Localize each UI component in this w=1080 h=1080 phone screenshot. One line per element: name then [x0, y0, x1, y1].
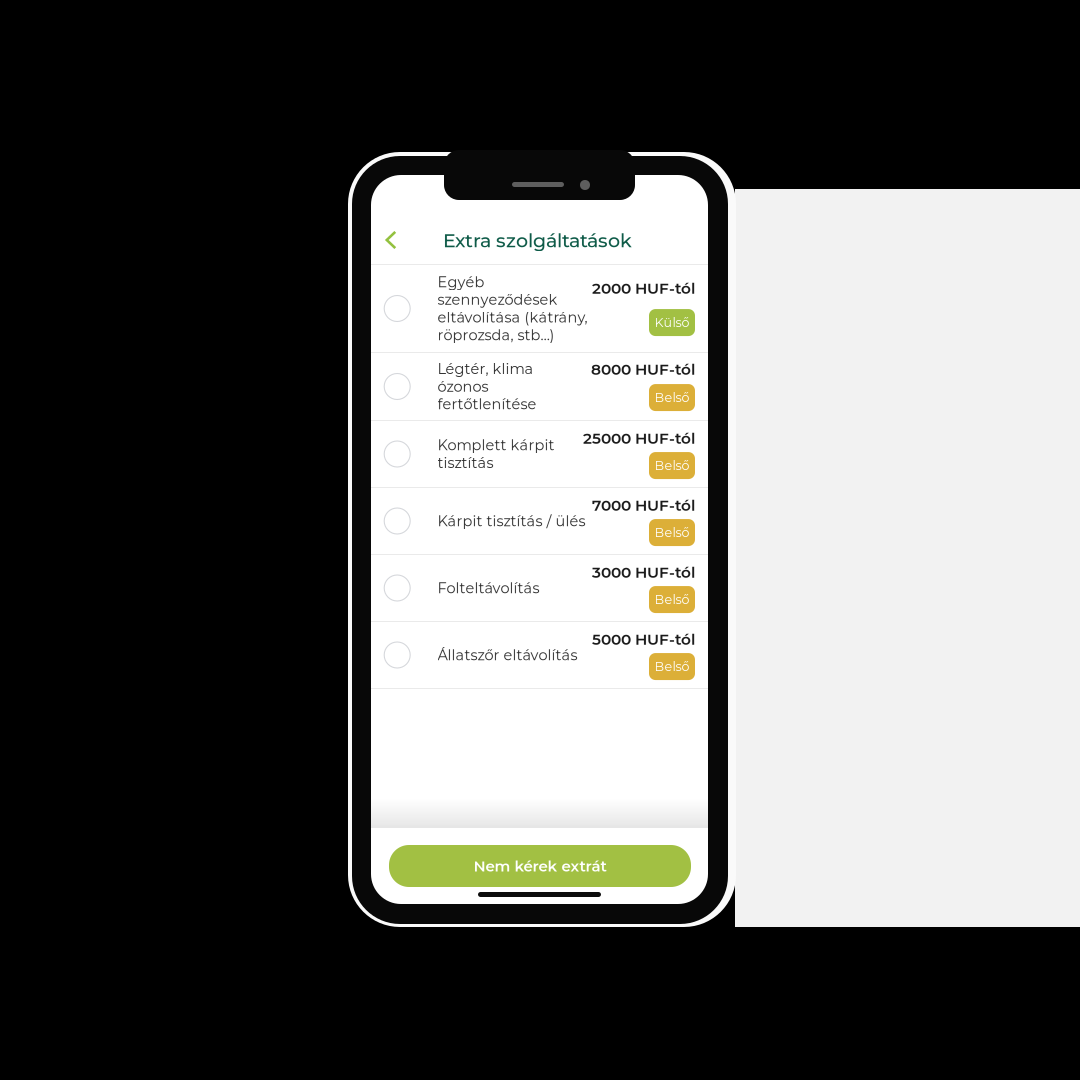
button[interactable]: Állatszőr eltávolítás: [371, 622, 708, 688]
staticText: Nem kérek extrát: [473, 857, 606, 875]
button[interactable]: Folteltávolítás: [371, 555, 708, 621]
staticText: Belső: [654, 390, 689, 405]
staticText: Belső: [654, 592, 689, 607]
staticText: Belső: [654, 659, 689, 674]
staticText: 8000 HUF-tól: [591, 360, 695, 378]
staticText: Belső: [654, 458, 689, 473]
staticText: 7000 HUF-tól: [592, 496, 695, 514]
staticText: Extra szolgáltatások: [443, 229, 632, 252]
staticText: Folteltávolítás: [437, 579, 539, 597]
staticText: 3000 HUF-tól: [592, 563, 695, 581]
staticText: Légtér, klima ózonos fertőtlenítése: [437, 360, 536, 413]
button[interactable]: Nem kérek extrát: [389, 845, 691, 887]
button[interactable]: Komplett kárpit tisztítás: [371, 421, 708, 487]
staticText: Állatszőr eltávolítás: [437, 646, 577, 664]
button[interactable]: Back: [370, 218, 412, 262]
button[interactable]: Kárpit tisztítás / ülés: [371, 488, 708, 554]
staticText: Komplett kárpit tisztítás: [437, 436, 554, 472]
staticText: 5000 HUF-tól: [592, 630, 695, 648]
staticText: 2000 HUF-tól: [592, 279, 695, 297]
staticText: Egyéb szennyeződések eltávolítása (kátrá…: [437, 273, 587, 344]
staticText: Kárpit tisztítás / ülés: [437, 512, 585, 530]
button[interactable]: Egyéb szennyeződések eltávolítása (kátrá…: [371, 265, 708, 352]
staticText: Külső: [654, 315, 689, 330]
staticText: 25000 HUF-tól: [583, 429, 695, 447]
button[interactable]: Légtér, klima ózonos fertőtlenítése: [371, 353, 708, 420]
staticText: Belső: [654, 525, 689, 540]
